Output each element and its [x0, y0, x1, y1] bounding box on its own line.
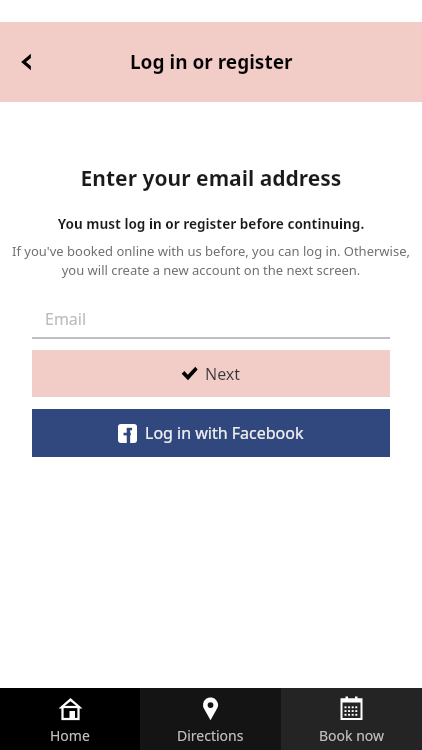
button[interactable]: Directions [140, 688, 281, 750]
button[interactable]: Log in with Facebook [32, 409, 390, 457]
button[interactable]: Back [0, 36, 52, 88]
staticText: Book now [319, 726, 385, 745]
button[interactable]: Book now [281, 688, 422, 750]
button[interactable]: Home [0, 688, 140, 750]
staticText: Home [50, 726, 90, 745]
button[interactable]: Email [32, 301, 390, 339]
staticText: Directions [177, 726, 244, 745]
staticText: Log in with Facebook [145, 422, 304, 444]
staticText: Email [45, 308, 87, 330]
staticText: Next [205, 363, 241, 385]
staticText: If you've booked online with us before, … [10, 242, 412, 279]
button[interactable]: Next [32, 350, 390, 397]
staticText: Enter your email address [0, 164, 422, 193]
staticText: You must log in or register before conti… [0, 215, 422, 233]
staticText: Log in or register [130, 49, 293, 75]
